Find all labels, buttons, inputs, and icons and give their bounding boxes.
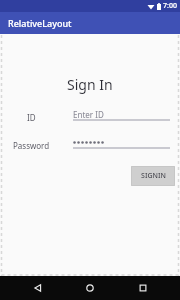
staticText: ID <box>27 112 36 123</box>
staticText: Password <box>13 140 50 151</box>
button[interactable]: Enter ID <box>73 109 170 121</box>
staticText: Enter ID <box>73 109 104 120</box>
button[interactable]: Home <box>75 276 105 300</box>
button[interactable]: Recent apps <box>128 276 158 300</box>
staticText: RelativeLayout <box>8 17 72 29</box>
staticText: SIGNIN <box>141 171 166 181</box>
button[interactable] <box>73 137 170 149</box>
staticText: Sign In <box>67 75 113 94</box>
button[interactable]: Back <box>23 276 53 300</box>
button[interactable]: SIGNIN <box>131 166 175 186</box>
staticText: 7:00 <box>163 1 177 11</box>
